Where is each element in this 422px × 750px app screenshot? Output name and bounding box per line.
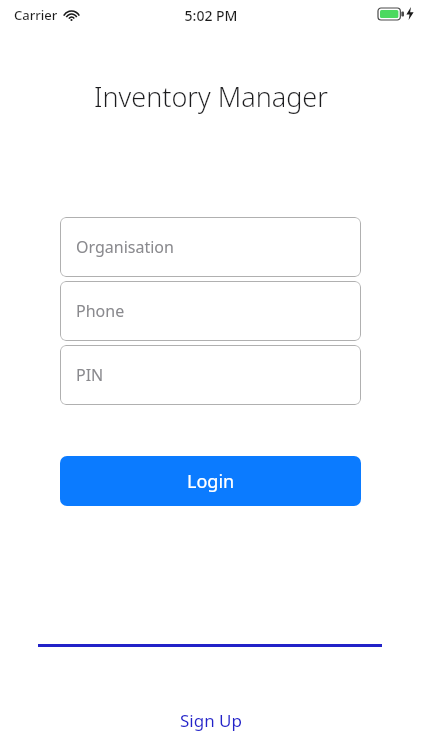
button[interactable]: Organisation — [60, 217, 361, 277]
staticText: Sign Up — [180, 709, 242, 732]
staticText: 5:02 PM — [0, 6, 422, 25]
staticText: Carrier — [14, 6, 58, 24]
staticText: Organisation — [76, 236, 174, 258]
staticText: PIN — [76, 364, 104, 386]
staticText: Login — [187, 469, 235, 494]
button[interactable]: Login — [60, 456, 361, 506]
button[interactable]: Sign Up — [0, 707, 422, 733]
staticText: Phone — [76, 300, 125, 322]
staticText: Inventory Manager — [0, 78, 422, 115]
button[interactable]: Phone — [60, 281, 361, 341]
button[interactable]: PIN — [60, 345, 361, 405]
